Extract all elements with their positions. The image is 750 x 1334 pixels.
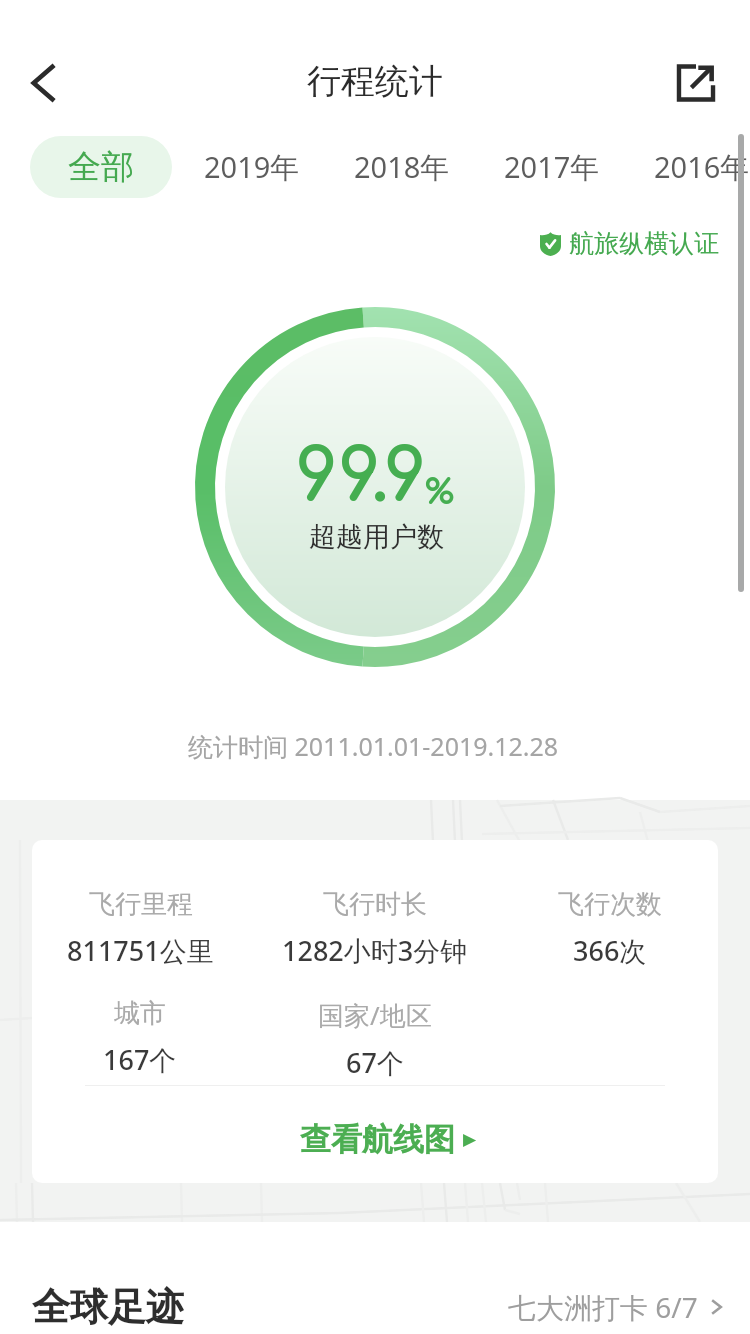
staticText: 全球足迹 [32, 1283, 184, 1331]
staticText: 超越用户数 [309, 520, 444, 554]
staticText: 航旅纵横认证 [569, 228, 719, 259]
button[interactable]: Share [666, 53, 726, 113]
staticText: 全部 [68, 146, 134, 188]
staticText: 城市 [114, 997, 166, 1030]
staticText: 查看航线图 [300, 1120, 455, 1159]
button[interactable]: 2019年 [177, 136, 327, 198]
staticText: 国家/地区 [318, 997, 432, 1033]
staticText: 366次 [573, 932, 647, 969]
staticText: 飞行时长 [323, 888, 427, 921]
staticText: % [425, 474, 455, 512]
button[interactable]: 全球足迹 [32, 1283, 184, 1331]
staticText: 2019年 [204, 147, 300, 187]
staticText: 811751公里 [67, 932, 214, 969]
staticText: 2017年 [504, 147, 600, 187]
staticText: 2018年 [354, 147, 450, 187]
button[interactable]: 七大洲打卡 6/7 [508, 1288, 728, 1326]
staticText: 1282小时3分钟 [282, 932, 468, 969]
staticText: 行程统计 [307, 60, 443, 103]
staticText: 167个 [103, 1041, 177, 1078]
staticText: 七大洲打卡 6/7 [508, 1288, 698, 1326]
button[interactable]: 航旅纵横认证 [540, 228, 719, 259]
button[interactable]: 全部 [30, 136, 172, 198]
staticText: 67个 [346, 1044, 404, 1081]
button[interactable]: 2018年 [327, 136, 477, 198]
staticText: 飞行次数 [558, 888, 662, 921]
button[interactable]: 2017年 [477, 136, 627, 198]
staticText: 统计时间 2011.01.01-2019.12.28 [188, 729, 559, 763]
staticText: 飞行里程 [89, 888, 193, 921]
button[interactable]: Back [12, 51, 76, 115]
button[interactable]: 2016年 [627, 136, 750, 198]
staticText: 2016年 [654, 147, 750, 187]
staticText: 99.9 [296, 438, 428, 518]
button[interactable]: 查看航线图 [32, 1095, 718, 1183]
